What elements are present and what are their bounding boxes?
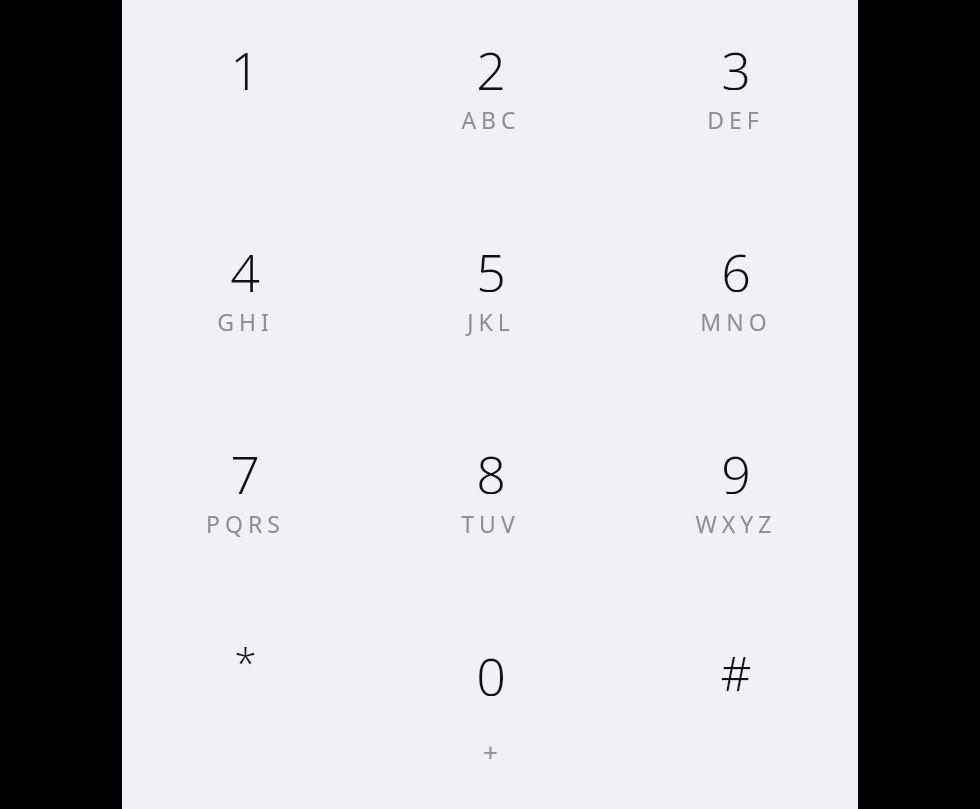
staticText: 9 [721, 438, 751, 494]
staticText: MNO [700, 306, 772, 337]
button[interactable]: * [122, 640, 368, 748]
staticText: 2 [476, 34, 506, 90]
staticText: 0 [476, 640, 506, 696]
staticText: 5 [476, 236, 506, 292]
button[interactable]: 4 [122, 236, 368, 344]
button[interactable]: 9 [613, 438, 858, 546]
button[interactable]: 5 [368, 236, 613, 344]
staticText: # [720, 640, 752, 696]
button[interactable]: 3 [613, 34, 858, 142]
staticText: JKL [467, 306, 515, 337]
staticText: * [234, 635, 257, 689]
button[interactable]: 1 [122, 34, 368, 142]
button[interactable]: # [613, 640, 858, 748]
staticText: WXYZ [695, 508, 777, 539]
staticText: 8 [476, 438, 506, 494]
button[interactable]: 7 [122, 438, 368, 546]
button[interactable]: 8 [368, 438, 613, 546]
staticText: GHI [217, 306, 274, 337]
staticText: TUV [461, 508, 520, 539]
staticText: ABC [461, 104, 521, 135]
staticText: + [483, 734, 498, 769]
staticText: 1 [230, 34, 260, 90]
button[interactable]: 6 [613, 236, 858, 344]
staticText: PQRS [206, 508, 285, 539]
button[interactable]: 0 [368, 640, 613, 748]
staticText: 6 [721, 236, 751, 292]
button[interactable]: 2 [368, 34, 613, 142]
staticText: 3 [721, 34, 751, 90]
staticText: DEF [707, 104, 764, 135]
staticText: 7 [230, 438, 260, 494]
staticText: 4 [230, 236, 260, 292]
